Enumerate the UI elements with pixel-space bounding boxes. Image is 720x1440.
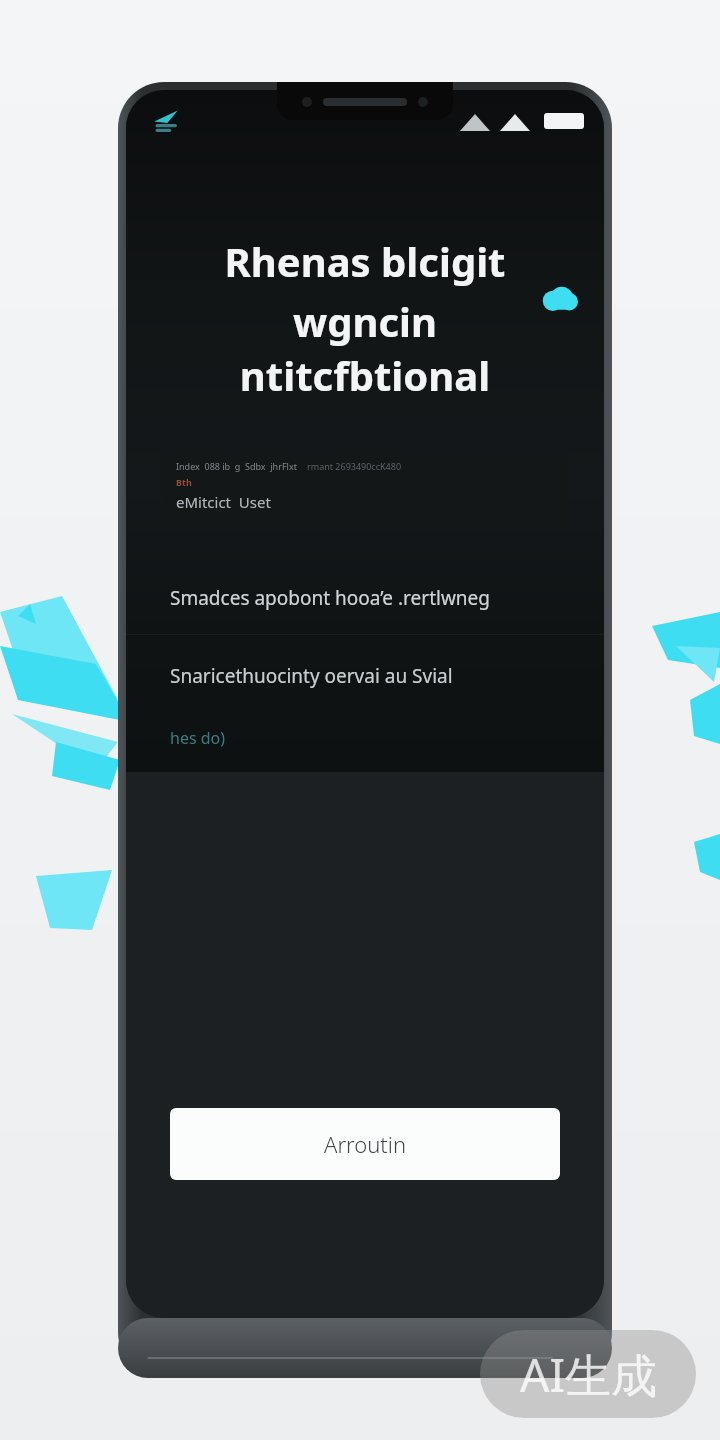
- staticText: Bth: [176, 476, 192, 488]
- button[interactable]: Back: [146, 101, 186, 141]
- button[interactable]: Arroutin: [170, 1108, 560, 1180]
- staticText: Smadces apobont hooa’e .rertlwneg: [170, 585, 490, 611]
- other: Cloud: [542, 288, 576, 310]
- staticText: Snaricethuocinty oervai au Svial: [170, 663, 453, 689]
- staticText: hes do): [170, 727, 226, 749]
- staticText: Arroutin: [324, 1129, 407, 1159]
- staticText: Rhenas blcigit: [170, 234, 560, 288]
- staticText: wgncin ntitcfbtional: [170, 294, 560, 402]
- button[interactable]: Index 088 ib g Sdbx jhrFlxt: [162, 452, 568, 528]
- staticText: Index 088 ib g Sdbx jhrFlxt: [176, 460, 297, 472]
- button[interactable]: Smadces apobont hooa’e .rertlwneg: [126, 562, 604, 634]
- staticText: eMitcict Uset: [176, 492, 271, 512]
- staticText: AI生成: [520, 1343, 657, 1406]
- staticText: rmant 2693490ccK480: [307, 460, 402, 472]
